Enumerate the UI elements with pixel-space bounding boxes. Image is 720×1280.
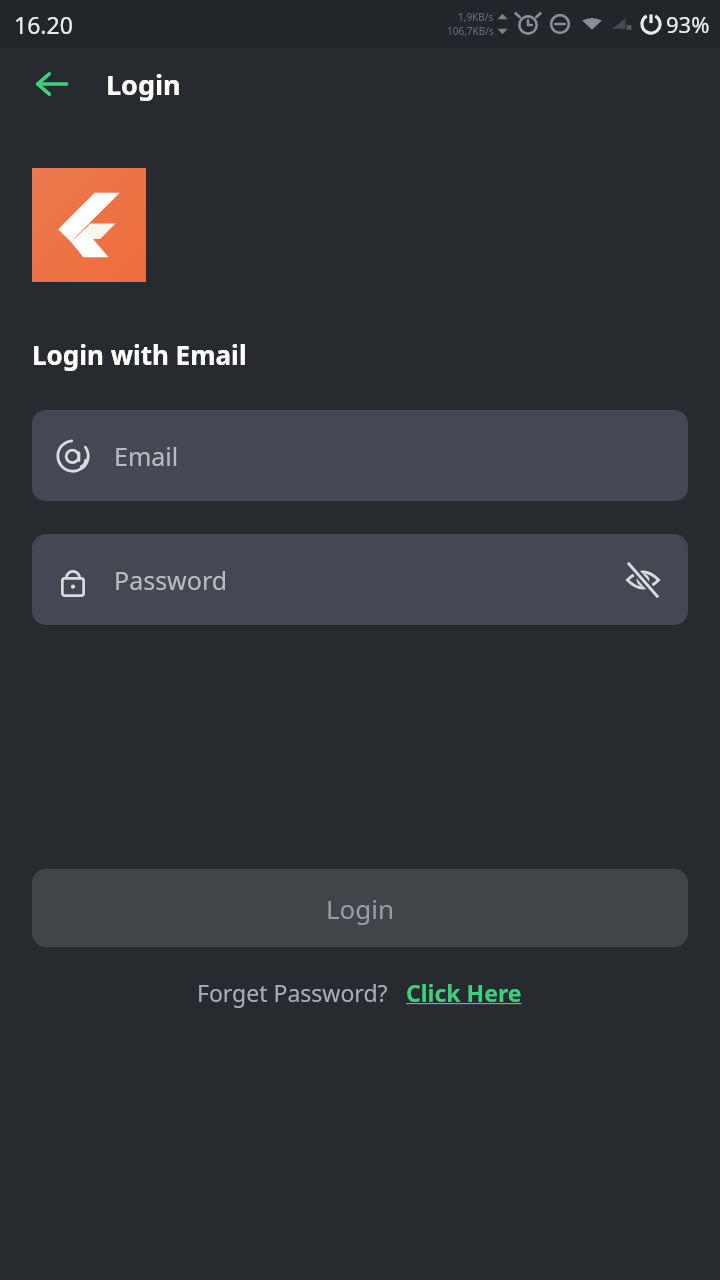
staticText: Login with Email (32, 337, 247, 372)
staticText: Email (114, 439, 666, 473)
button[interactable]: Email (32, 410, 688, 501)
button[interactable]: Click Here (404, 975, 524, 1010)
staticText: 93% (666, 9, 710, 39)
staticText: 106,7KB/s (447, 24, 494, 38)
button[interactable]: Login (32, 869, 688, 947)
button[interactable]: Password (32, 534, 688, 625)
staticText: 1,9KB/s (458, 10, 494, 24)
button[interactable]: App logo (32, 168, 146, 282)
button[interactable]: Toggle password visibility (620, 557, 666, 603)
button[interactable]: Back (22, 54, 82, 114)
staticText: Click Here (406, 977, 522, 1008)
staticText: Login (326, 891, 395, 926)
staticText: Password (114, 563, 620, 597)
staticText: 16.20 (14, 9, 73, 40)
staticText: Login (106, 66, 181, 103)
staticText: Forget Password? (197, 977, 388, 1008)
